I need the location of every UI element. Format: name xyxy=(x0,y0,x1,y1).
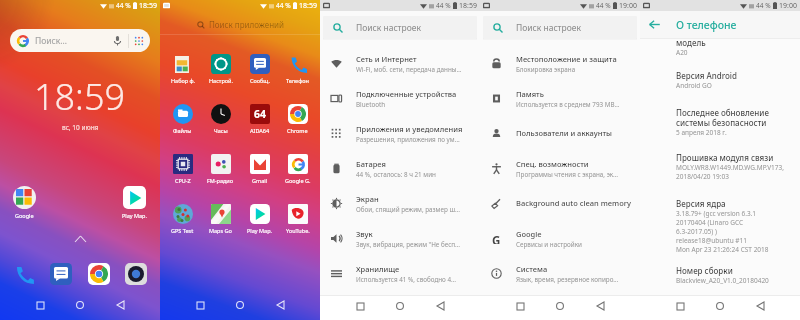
button[interactable]: Recents xyxy=(30,295,50,315)
staticText: Android GO xyxy=(676,81,712,90)
button[interactable]: Версия ядра xyxy=(676,198,800,254)
staticText: 44 % xyxy=(596,1,611,10)
button[interactable]: Хранилище xyxy=(320,256,480,291)
button[interactable]: Система xyxy=(480,256,640,291)
button[interactable]: Прошивка модуля связи xyxy=(676,152,800,181)
staticText: вс, 10 июня xyxy=(62,123,99,132)
staticText: YouTube. xyxy=(286,227,310,234)
button[interactable]: Back xyxy=(640,11,800,38)
button[interactable]: Настрой. xyxy=(203,54,238,84)
button[interactable]: Phone xyxy=(288,54,308,74)
staticText: Спец. возможности xyxy=(516,159,589,169)
staticText: 44 % xyxy=(436,1,451,10)
button[interactable]: Messages xyxy=(242,54,277,84)
button[interactable]: Chrome xyxy=(280,104,315,134)
staticText: Поиск настроек xyxy=(356,22,421,34)
button[interactable]: модель xyxy=(676,37,800,57)
staticText: G xyxy=(492,233,501,244)
staticText: Поиск приложений xyxy=(209,19,284,30)
staticText: Прошивка модуля связи xyxy=(676,152,774,163)
staticText: Файлы xyxy=(173,127,192,134)
staticText: Последнее обновление системы безопасност… xyxy=(676,107,769,128)
button[interactable]: Maps Go xyxy=(203,204,238,234)
staticText: модель xyxy=(676,37,706,48)
button[interactable]: Messages xyxy=(250,54,270,74)
button[interactable]: 64 xyxy=(242,104,277,134)
button[interactable]: Camera xyxy=(125,263,147,285)
staticText: Сеть и Интернет xyxy=(356,54,417,64)
button[interactable]: Номер сборки xyxy=(676,265,800,285)
button[interactable]: Память xyxy=(480,81,640,116)
staticText: Play Мар. xyxy=(122,212,147,219)
staticText: Версия Android xyxy=(676,70,737,81)
staticText: Сервисы и настройки xyxy=(516,240,582,249)
staticText: 5 апреля 2018 г. xyxy=(676,128,727,137)
staticText: Часы xyxy=(214,127,228,134)
staticText: Звук xyxy=(356,229,373,239)
button[interactable]: Back xyxy=(430,296,450,316)
staticText: Google xyxy=(516,229,542,239)
button[interactable]: Приложения и уведомления xyxy=(320,116,480,151)
button[interactable]: Файлы xyxy=(165,104,200,134)
button[interactable]: Back xyxy=(270,295,290,315)
staticText: Версия ядра xyxy=(676,198,726,209)
staticText: Wi-Fi, моб. сети, передача данны… xyxy=(356,65,462,74)
button[interactable]: Play Мар. xyxy=(122,186,147,219)
button[interactable]: Home xyxy=(550,296,570,316)
button[interactable]: GPS Test xyxy=(165,204,200,234)
staticText: AIDA64 xyxy=(250,127,270,134)
button[interactable]: Батарея xyxy=(320,151,480,186)
staticText: Звук, вибрация, режим "Не бесп… xyxy=(356,240,461,249)
button[interactable]: Последнее обновление системы безопасност… xyxy=(676,107,800,137)
button[interactable]: Recents xyxy=(350,296,370,316)
staticText: Используется в среднем 793 МВ… xyxy=(516,100,620,109)
staticText: FM-радио xyxy=(207,177,234,184)
button[interactable]: Phone xyxy=(280,54,315,84)
button[interactable]: Back xyxy=(648,18,661,31)
button[interactable]: Recents xyxy=(190,295,210,315)
button[interactable]: Recents xyxy=(510,296,530,316)
staticText: Пользователи и аккаунты xyxy=(516,128,612,138)
button[interactable]: YouTube. xyxy=(280,204,315,234)
staticText: Телефон xyxy=(286,77,309,84)
button[interactable]: Back xyxy=(590,296,610,316)
button[interactable]: Back xyxy=(750,296,770,316)
staticText: Подключенные устройства xyxy=(356,89,457,99)
button[interactable]: Home xyxy=(230,295,250,315)
button[interactable]: Google G. xyxy=(280,154,315,184)
button[interactable]: Play Map. xyxy=(242,204,277,234)
button[interactable]: Home xyxy=(70,295,90,315)
staticText: Батарея xyxy=(356,159,386,169)
button[interactable]: FM-радио xyxy=(203,154,238,184)
button[interactable]: Google xyxy=(13,186,36,219)
button[interactable]: Background auto clean memory xyxy=(480,186,640,221)
button[interactable]: Поиск настроек xyxy=(323,16,477,39)
button[interactable]: Messages xyxy=(50,263,72,285)
button[interactable]: Подключенные устройства xyxy=(320,81,480,116)
button[interactable]: Back xyxy=(110,295,130,315)
button[interactable]: Версия Android xyxy=(676,70,800,90)
button[interactable]: Home xyxy=(710,296,730,316)
button[interactable]: G xyxy=(480,221,640,256)
button[interactable]: Поиск… xyxy=(10,29,150,52)
button[interactable]: Поиск настроек xyxy=(483,16,637,39)
button[interactable]: Часы xyxy=(203,104,238,134)
button[interactable]: Сеть и Интернет xyxy=(320,46,480,81)
button[interactable]: Chrome xyxy=(288,104,308,124)
staticText: Номер сборки xyxy=(676,265,733,276)
button[interactable]: Chrome xyxy=(88,263,110,285)
staticText: 19:00 xyxy=(619,1,637,11)
button[interactable]: Звук xyxy=(320,221,480,256)
button[interactable]: Экран xyxy=(320,186,480,221)
button[interactable]: Набор ф. xyxy=(165,54,200,84)
button[interactable]: Home xyxy=(390,296,410,316)
button[interactable]: CPU-Z xyxy=(165,154,200,184)
button[interactable]: Recents xyxy=(670,296,690,316)
staticText: 18:59 xyxy=(34,72,126,121)
button[interactable]: Спец. возможности xyxy=(480,151,640,186)
staticText: Программы чтения с экрана, эк… xyxy=(516,170,619,179)
button[interactable]: Пользователи и аккаунты xyxy=(480,116,640,151)
button[interactable]: Местоположение и защита xyxy=(480,46,640,81)
button[interactable]: Gmail xyxy=(242,154,277,184)
button[interactable]: Phone xyxy=(13,263,35,285)
